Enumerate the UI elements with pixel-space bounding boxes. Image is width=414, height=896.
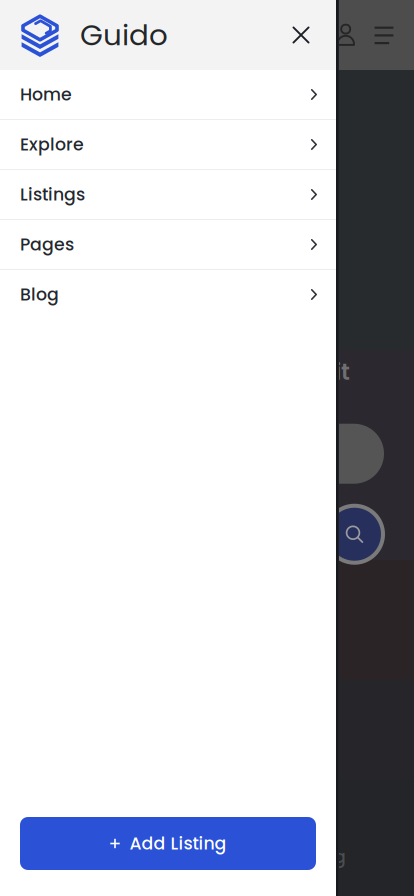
staticText: Pages: [20, 232, 74, 257]
staticText: Home: [20, 82, 72, 107]
staticText: Listings: [20, 182, 85, 207]
button[interactable]: Home: [0, 70, 336, 119]
staticText: Explore: [20, 132, 84, 157]
button[interactable]: Add Listing: [20, 817, 316, 870]
staticText: dolor sit: [260, 356, 350, 388]
button[interactable]: Listings: [0, 170, 336, 219]
button[interactable]: Blog: [0, 270, 336, 319]
button[interactable]: Pages: [0, 220, 336, 269]
staticText: Guido: [80, 14, 168, 56]
button[interactable]: Account: [328, 13, 364, 57]
button[interactable]: Open menu: [370, 13, 398, 57]
staticText: Listing: [290, 845, 346, 869]
staticText: Add Listing: [129, 831, 226, 856]
button[interactable]: Close menu: [282, 16, 320, 54]
button[interactable]: Explore: [0, 120, 336, 169]
staticText: Blog: [20, 282, 59, 307]
